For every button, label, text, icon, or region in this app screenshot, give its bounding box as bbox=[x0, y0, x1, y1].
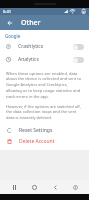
staticText: 8:41 bbox=[3, 9, 11, 14]
button[interactable]: Back bbox=[49, 181, 61, 193]
button[interactable]: Crashlytics bbox=[0, 40, 89, 53]
staticText: Crashlytics bbox=[18, 43, 44, 50]
staticText: When these options are enabled, data abo… bbox=[6, 71, 83, 100]
staticText: Analytics bbox=[18, 56, 39, 63]
button[interactable]: Recents bbox=[8, 181, 20, 193]
button[interactable]: Home bbox=[28, 181, 40, 193]
staticText: Delete Account bbox=[19, 138, 55, 145]
button[interactable]: Hide keyboard bbox=[69, 181, 81, 193]
staticText: Other bbox=[21, 18, 41, 28]
button[interactable]: Toggle bbox=[73, 44, 84, 50]
staticText: Google bbox=[5, 33, 21, 39]
button[interactable]: Analytics bbox=[0, 53, 89, 66]
button[interactable]: Back bbox=[4, 17, 15, 28]
staticText: Reset Settings bbox=[19, 127, 53, 134]
staticText: However, if the options are switched off… bbox=[6, 104, 83, 121]
button[interactable]: Toggle bbox=[73, 57, 84, 63]
button[interactable]: Reset Settings bbox=[6, 125, 83, 136]
button[interactable]: Delete Account bbox=[6, 136, 83, 147]
